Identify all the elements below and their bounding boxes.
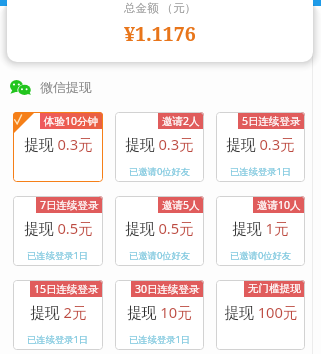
- staticText: 提现 1元: [232, 218, 289, 238]
- staticText: 已邀请0位好友: [129, 165, 191, 178]
- staticText: 微信提现: [40, 79, 92, 95]
- staticText: ¥1.1176: [124, 20, 196, 47]
- staticText: 邀请5人: [162, 198, 200, 212]
- button[interactable]: 邀请10人: [216, 196, 305, 266]
- staticText: 提现 0.5元: [125, 218, 194, 238]
- button[interactable]: 无门槛提现: [216, 280, 305, 350]
- button[interactable]: 7日连续登录: [13, 196, 103, 266]
- staticText: 30日连续登录: [135, 282, 200, 296]
- staticText: 提现 0.3元: [125, 134, 194, 154]
- other: WeChat: [10, 80, 31, 95]
- staticText: 已连续登录1日: [27, 333, 89, 346]
- button[interactable]: WeChat: [10, 79, 92, 95]
- staticText: 总金额 （元）: [124, 0, 196, 16]
- staticText: 邀请10人: [257, 198, 301, 212]
- staticText: 提现 10元: [127, 302, 192, 322]
- staticText: 提现 0.3元: [24, 134, 93, 154]
- staticText: 无门槛提现: [248, 282, 301, 295]
- button[interactable]: 15日连续登录: [13, 280, 103, 350]
- staticText: 提现 2元: [30, 302, 87, 322]
- button[interactable]: 邀请2人: [115, 112, 204, 182]
- staticText: 7日连续登录: [40, 198, 99, 212]
- staticText: 体验10分钟: [44, 114, 99, 128]
- staticText: 5日连续登录: [242, 114, 301, 128]
- button[interactable]: 体验10分钟: [13, 112, 103, 182]
- button[interactable]: 邀请5人: [115, 196, 204, 266]
- button[interactable]: 5日连续登录: [216, 112, 305, 182]
- staticText: 已连续登录1日: [129, 333, 191, 346]
- staticText: 提现 0.5元: [24, 218, 93, 238]
- staticText: 已连续登录1日: [230, 165, 292, 178]
- staticText: 已连续登录1日: [27, 249, 89, 262]
- staticText: 提现 100元: [224, 302, 298, 322]
- button[interactable]: 30日连续登录: [115, 280, 204, 350]
- staticText: 已邀请0位好友: [129, 249, 191, 262]
- staticText: 15日连续登录: [34, 282, 99, 296]
- staticText: 已邀请0位好友: [230, 249, 292, 262]
- staticText: 提现 0.3元: [226, 134, 295, 154]
- staticText: 邀请2人: [162, 114, 200, 128]
